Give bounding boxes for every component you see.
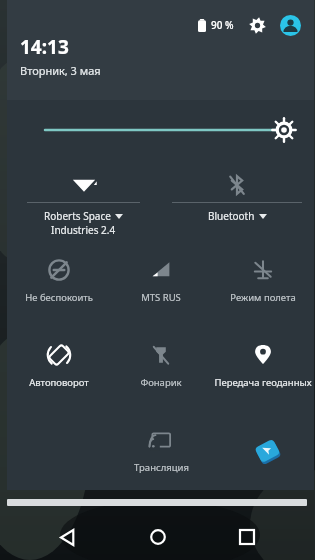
- button[interactable]: Трансляция: [110, 418, 212, 490]
- staticText: Roberts Space: [44, 209, 111, 223]
- staticText: 14:13: [20, 34, 69, 60]
- button[interactable]: Back: [46, 515, 90, 559]
- staticText: Industries 2.4: [51, 223, 116, 237]
- button[interactable]: Roberts Space: [7, 164, 160, 242]
- staticText: Вторник, 3 мая: [20, 63, 101, 78]
- button[interactable]: Pointer app: [252, 436, 284, 468]
- button[interactable]: Передача геоданных: [212, 333, 314, 418]
- staticText: Bluetooth: [208, 209, 255, 223]
- button[interactable]: User profile: [278, 13, 302, 37]
- button[interactable]: Recent apps: [225, 515, 269, 559]
- button[interactable]: MTS RUS: [110, 248, 212, 333]
- button[interactable]: Автоповорот: [7, 333, 110, 418]
- staticText: Фонарик: [140, 376, 182, 389]
- staticText: Передача геоданных: [214, 376, 312, 389]
- button[interactable]: Фонарик: [110, 333, 212, 418]
- staticText: 90 %: [211, 18, 234, 32]
- button[interactable]: Не беспокоить: [7, 248, 110, 333]
- staticText: Не беспокоить: [25, 291, 93, 304]
- button[interactable]: Settings: [246, 14, 268, 36]
- staticText: Автоповорот: [29, 376, 89, 389]
- button[interactable]: Brightness: [7, 100, 314, 160]
- staticText: Режим полета: [230, 291, 296, 304]
- button[interactable]: Home: [136, 515, 180, 559]
- staticText: MTS RUS: [141, 291, 181, 304]
- staticText: Трансляция: [134, 461, 189, 474]
- button[interactable]: Режим полета: [212, 248, 314, 333]
- button[interactable]: Bluetooth: [160, 164, 314, 242]
